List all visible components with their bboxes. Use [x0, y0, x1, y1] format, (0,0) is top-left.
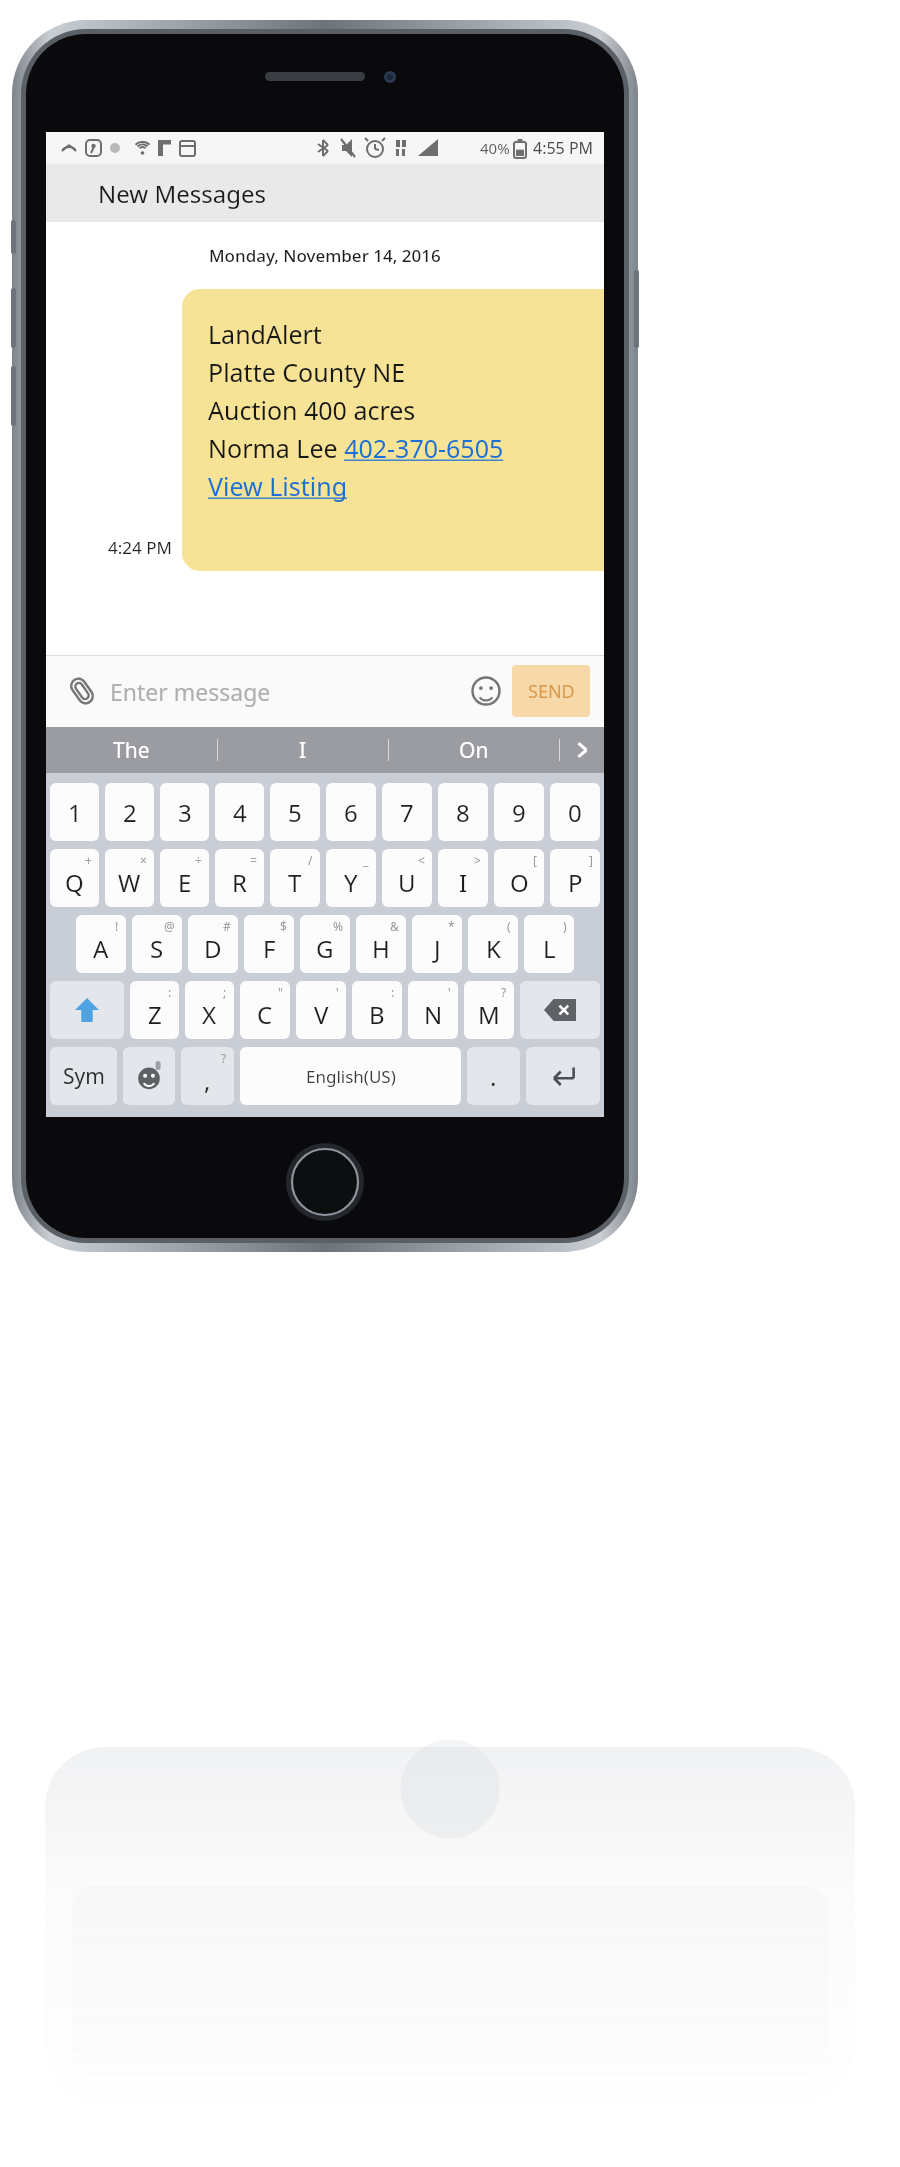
button[interactable]: : — [130, 981, 179, 1039]
button[interactable]: ) — [524, 915, 574, 973]
staticText: Auction 400 acres — [208, 393, 416, 427]
button[interactable]: ÷ — [160, 849, 209, 907]
staticText: P — [568, 866, 583, 899]
staticText: Z — [148, 998, 162, 1031]
staticText: F — [263, 932, 276, 965]
button[interactable]: : — [352, 981, 402, 1039]
button[interactable]: ? — [464, 981, 514, 1039]
staticText: ' — [448, 984, 451, 1000]
button[interactable]: ( — [468, 915, 518, 973]
button[interactable]: @ — [132, 915, 182, 973]
button[interactable]: = — [215, 849, 264, 907]
button[interactable]: " — [240, 981, 290, 1039]
button[interactable]: The — [46, 727, 217, 773]
button[interactable]: ! — [76, 915, 126, 973]
button[interactable]: [ — [494, 849, 544, 907]
staticText: The — [113, 736, 150, 765]
button[interactable]: Sym — [50, 1047, 117, 1105]
button[interactable]: ' — [296, 981, 346, 1039]
button[interactable]: ; — [185, 981, 234, 1039]
staticText: ] — [589, 852, 593, 868]
staticText: L — [543, 932, 556, 965]
staticText: % — [333, 918, 343, 934]
staticText: Monday, November 14, 2016 — [209, 244, 441, 267]
staticText: Y — [344, 866, 358, 899]
staticText: . — [490, 1060, 497, 1093]
button[interactable]: _ — [326, 849, 376, 907]
staticText: : — [168, 984, 172, 1000]
staticText: Platte County NE — [208, 355, 406, 389]
button[interactable]: < — [382, 849, 432, 907]
staticText: * — [448, 918, 455, 934]
button[interactable]: / — [270, 849, 320, 907]
staticText: Norma Lee 402-370-6505 — [208, 431, 504, 465]
staticText: , — [204, 1064, 211, 1097]
staticText: B — [369, 998, 385, 1031]
button[interactable]: On — [389, 727, 559, 773]
staticText: I — [299, 736, 307, 765]
button[interactable]: $ — [244, 915, 294, 973]
staticText: V — [314, 998, 329, 1031]
button[interactable]: ? — [181, 1047, 234, 1105]
button[interactable]: Shift — [50, 981, 124, 1039]
staticText: # — [223, 918, 231, 934]
button[interactable]: I — [218, 727, 388, 773]
staticText: T — [288, 866, 302, 899]
button[interactable]: Emoji and voice input — [123, 1047, 175, 1105]
button[interactable]: * — [412, 915, 462, 973]
button[interactable]: × — [105, 849, 154, 907]
staticText: 4:24 PM — [108, 536, 172, 559]
staticText: R — [232, 866, 247, 899]
staticText: 4:55 PM — [533, 137, 594, 159]
staticText: N — [424, 998, 443, 1031]
button[interactable]: 8 — [438, 783, 488, 841]
button[interactable]: 4 — [215, 783, 264, 841]
staticText: : — [391, 984, 395, 1000]
staticText: C — [257, 998, 273, 1031]
button[interactable]: 2 — [105, 783, 154, 841]
button[interactable]: 6 — [326, 783, 376, 841]
button[interactable]: Enter — [526, 1047, 600, 1105]
button[interactable]: SEND — [512, 665, 590, 717]
button[interactable]: 7 — [382, 783, 432, 841]
button[interactable]: 3 — [160, 783, 209, 841]
staticText: 0 — [568, 796, 582, 829]
staticText: > — [474, 852, 481, 868]
button[interactable]: Backspace — [520, 981, 600, 1039]
staticText: 40% — [480, 138, 510, 158]
button[interactable]: Enter message — [110, 676, 464, 707]
staticText: & — [390, 918, 399, 934]
button[interactable]: . — [467, 1047, 520, 1105]
button[interactable]: # — [188, 915, 238, 973]
staticText: 9 — [512, 796, 526, 829]
button[interactable]: More suggestions — [560, 727, 604, 773]
button[interactable]: ] — [550, 849, 600, 907]
staticText: K — [486, 932, 501, 965]
staticText: U — [398, 866, 416, 899]
button[interactable]: 9 — [494, 783, 544, 841]
staticText: D — [204, 932, 222, 965]
staticText: X — [202, 998, 217, 1031]
button[interactable]: 1 — [50, 783, 99, 841]
button[interactable]: View Listing — [208, 469, 348, 503]
button[interactable]: > — [438, 849, 488, 907]
button[interactable]: & — [356, 915, 406, 973]
staticText: Q — [65, 866, 84, 899]
button[interactable]: Emoji — [464, 669, 508, 713]
staticText: ? — [501, 984, 507, 1000]
staticText: English(US) — [306, 1065, 396, 1088]
button[interactable]: 5 — [270, 783, 320, 841]
button[interactable]: ' — [408, 981, 458, 1039]
staticText: G — [316, 932, 334, 965]
staticText: O — [510, 866, 529, 899]
button[interactable]: English(US) — [240, 1047, 461, 1105]
staticText: H — [372, 932, 390, 965]
button[interactable]: + — [50, 849, 99, 907]
button[interactable]: LandAlert — [182, 289, 604, 571]
button[interactable]: 0 — [550, 783, 600, 841]
staticText: 3 — [178, 796, 192, 829]
button[interactable]: New Messages — [46, 164, 604, 222]
button[interactable]: Attach file — [60, 669, 104, 713]
button[interactable]: % — [300, 915, 350, 973]
staticText: ÷ — [195, 852, 202, 868]
